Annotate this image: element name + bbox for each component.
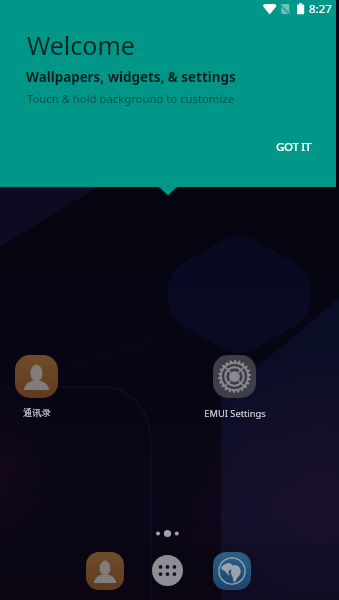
button[interactable]: Contacts [86, 552, 124, 590]
staticText: 8:27 [309, 1, 332, 17]
staticText: Welcome [27, 28, 135, 62]
staticText: Touch & hold background to customize [27, 91, 235, 106]
staticText: 通讯录 [23, 407, 51, 419]
button[interactable]: 通讯录 [7, 355, 66, 419]
button[interactable]: EMUI Settings [195, 355, 274, 420]
button[interactable]: GOT IT [261, 129, 327, 165]
staticText: Wallpapers, widgets, & settings [26, 68, 236, 86]
staticText: GOT IT [276, 139, 312, 155]
staticText: EMUI Settings [204, 407, 266, 420]
button[interactable]: Browser [213, 552, 251, 590]
button[interactable]: All apps [152, 555, 183, 586]
